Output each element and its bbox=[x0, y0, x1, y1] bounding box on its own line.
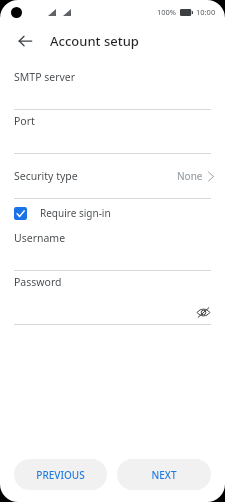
button[interactable]: Require sign-in bbox=[0, 199, 225, 227]
staticText: SMTP server bbox=[14, 70, 76, 84]
button[interactable]: SMTP server bbox=[0, 66, 225, 110]
staticText: 100% bbox=[157, 7, 177, 17]
staticText: Password bbox=[14, 275, 62, 289]
staticText: Username bbox=[14, 231, 66, 245]
staticText: NEXT bbox=[151, 468, 177, 482]
button[interactable]: Security type bbox=[0, 154, 225, 199]
staticText: PREVIOUS bbox=[36, 468, 85, 482]
staticText: Require sign-in bbox=[40, 206, 111, 220]
button[interactable]: Back bbox=[14, 30, 36, 52]
staticText: Account setup bbox=[50, 32, 139, 50]
button[interactable]: NEXT bbox=[117, 459, 211, 490]
staticText: Port bbox=[14, 114, 35, 128]
button[interactable]: Username bbox=[0, 227, 225, 271]
staticText: 10:00 bbox=[196, 7, 216, 17]
staticText: Security type bbox=[14, 169, 78, 183]
staticText: None bbox=[177, 169, 203, 183]
button[interactable]: Show password bbox=[193, 302, 213, 322]
button[interactable]: Password bbox=[0, 271, 225, 325]
button[interactable]: Port bbox=[0, 110, 225, 154]
button[interactable]: PREVIOUS bbox=[14, 459, 107, 490]
